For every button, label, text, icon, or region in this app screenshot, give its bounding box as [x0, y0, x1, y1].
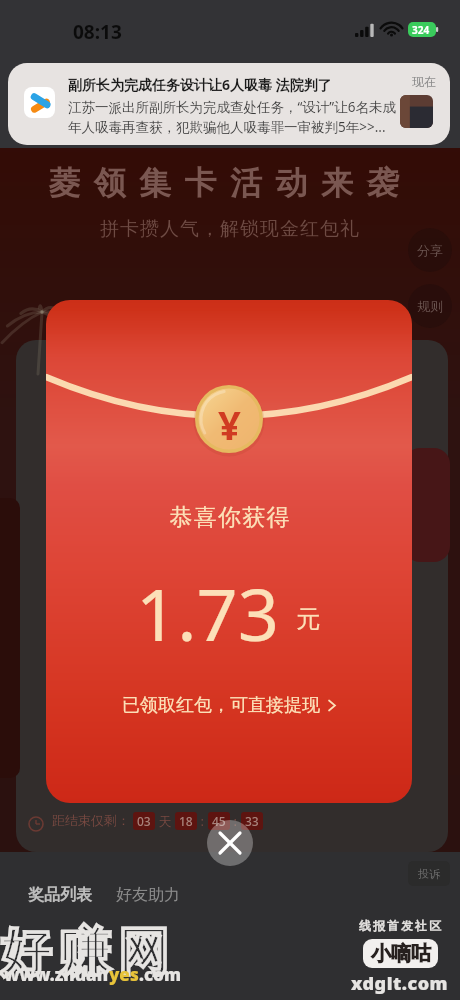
staticText: yes: [109, 963, 139, 986]
staticText: 投诉: [418, 867, 440, 881]
staticText: 天: [155, 812, 175, 830]
staticText: 线报首发社区: [358, 918, 442, 933]
staticText: 45: [212, 813, 226, 829]
staticText: 元: [296, 604, 320, 634]
staticText: 03: [137, 813, 151, 829]
staticText: 菱领集卡活动来袭: [0, 163, 460, 203]
button[interactable]: 已领取红包，可直接提现: [116, 690, 343, 721]
staticText: 好友助力: [116, 885, 180, 905]
button[interactable]: 分享: [408, 228, 452, 272]
button[interactable]: 规则: [408, 284, 452, 328]
staticText: www.zhuan: [4, 963, 109, 986]
staticText: 现在: [412, 74, 436, 89]
staticText: xdglt.com: [351, 971, 449, 996]
staticText: 距结束仅剩：: [52, 812, 130, 828]
button[interactable]: 副所长为完成任务设计让6人吸毒 法院判了: [8, 63, 450, 145]
staticText: 33: [245, 813, 259, 829]
staticText: 恭喜你获得: [169, 503, 290, 532]
button[interactable]: 投诉: [408, 861, 450, 886]
staticText: ¥: [218, 397, 241, 441]
staticText: 江苏一派出所副所长为完成查处任务，“设计”让6名未成年人吸毒再查获，犯欺骗他人吸…: [68, 98, 398, 136]
staticText: 副所长为完成任务设计让6人吸毒 法院判了: [68, 75, 332, 94]
staticText: 拼卡攒人气，解锁现金红包礼: [0, 217, 460, 241]
staticText: 08:13: [73, 19, 122, 45]
staticText: 分享: [417, 242, 443, 258]
staticText: :: [230, 812, 241, 830]
staticText: .com: [139, 963, 181, 986]
staticText: 小嘀咕: [371, 941, 431, 966]
button[interactable]: Close: [207, 820, 253, 866]
staticText: 18: [179, 813, 193, 829]
staticText: 324: [412, 23, 430, 37]
staticText: :: [197, 812, 208, 830]
staticText: 已领取红包，可直接提现: [122, 694, 320, 717]
staticText: 1.73: [136, 564, 279, 662]
staticText: 规则: [417, 298, 443, 314]
staticText: 奖品列表: [28, 885, 92, 905]
staticText: 好赚网: [0, 921, 173, 984]
